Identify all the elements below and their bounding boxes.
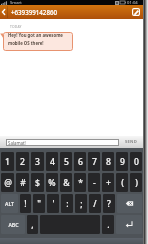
button[interactable]: : <box>61 194 73 213</box>
staticText: 7 <box>92 156 97 168</box>
staticText: ! <box>24 198 27 210</box>
button[interactable]: ) <box>130 173 142 192</box>
button[interactable]: 0 <box>130 152 142 171</box>
staticText: - <box>93 177 96 189</box>
staticText: Hey! You got an awesome <box>8 32 63 38</box>
button[interactable]: 6 <box>74 152 86 171</box>
staticText: : <box>66 198 69 210</box>
button[interactable]: + <box>102 173 114 192</box>
staticText: mobile OS there! <box>8 40 44 46</box>
staticText: TODAY <box>10 24 22 28</box>
button[interactable]: 1 <box>1 152 14 171</box>
button[interactable]: SEND <box>119 136 143 148</box>
staticText: # <box>20 177 26 189</box>
button[interactable]: $ <box>31 173 44 192</box>
button[interactable]: ' <box>47 194 59 213</box>
button[interactable]: 2 <box>16 152 29 171</box>
button[interactable]: ; <box>75 194 87 213</box>
button[interactable]: ! <box>20 194 31 213</box>
button[interactable]: , <box>27 215 38 234</box>
button[interactable]: / <box>89 194 101 213</box>
staticText: Salamat! <box>8 140 26 146</box>
button[interactable]: Enter <box>116 215 142 234</box>
staticText: 3 <box>35 156 40 168</box>
staticText: Smart <box>10 0 22 5</box>
staticText: SEND <box>125 139 137 145</box>
button[interactable]: - <box>88 173 100 192</box>
staticText: ABC <box>8 221 19 228</box>
button[interactable]: @ <box>1 173 14 192</box>
button[interactable]: New message <box>129 5 143 19</box>
staticText: 8 <box>106 156 111 168</box>
staticText: / <box>93 198 97 210</box>
staticText: , <box>31 219 34 231</box>
button[interactable]: & <box>60 173 72 192</box>
button[interactable]: Back <box>0 5 7 19</box>
staticText: ) <box>135 177 138 189</box>
button[interactable]: 7 <box>88 152 100 171</box>
staticText: 5 <box>64 156 69 168</box>
staticText: 4 <box>50 156 55 168</box>
staticText: ALT <box>5 200 14 207</box>
staticText: . <box>107 219 110 231</box>
button[interactable]: ABC <box>1 215 25 234</box>
button[interactable]: 4 <box>46 152 58 171</box>
button[interactable]: 9 <box>116 152 128 171</box>
staticText: 0 <box>134 156 139 168</box>
staticText: % <box>48 177 56 189</box>
staticText: ; <box>80 198 83 210</box>
staticText: +639399142860 <box>11 8 58 16</box>
staticText: & <box>63 177 70 189</box>
staticText: 6 <box>78 156 83 168</box>
staticText: * <box>78 177 83 189</box>
button[interactable]: 8 <box>102 152 114 171</box>
button[interactable]: Backspace <box>117 194 142 213</box>
button[interactable]: ? <box>103 194 115 213</box>
button[interactable]: ( <box>116 173 128 192</box>
staticText: + <box>106 177 111 189</box>
staticText: $ <box>35 177 40 189</box>
staticText: ' <box>52 198 55 210</box>
staticText: 1 <box>5 156 10 168</box>
staticText: 2 <box>20 156 25 168</box>
button[interactable]: 5 <box>60 152 72 171</box>
staticText: " <box>37 198 41 210</box>
button[interactable]: % <box>46 173 58 192</box>
staticText: 9 <box>120 156 125 168</box>
button[interactable]: . <box>102 215 114 234</box>
button[interactable]: ALT <box>1 194 18 213</box>
button[interactable]: " <box>33 194 45 213</box>
staticText: @ <box>4 177 12 189</box>
button[interactable]: 3 <box>31 152 44 171</box>
staticText: ? <box>107 198 111 210</box>
staticText: ( <box>121 177 124 189</box>
button[interactable]: * <box>74 173 86 192</box>
staticText: 01:04 <box>127 0 138 5</box>
button[interactable]: # <box>16 173 29 192</box>
